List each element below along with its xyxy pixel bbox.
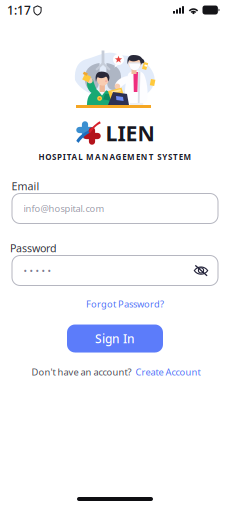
staticText: Create Account	[135, 366, 200, 378]
button[interactable]: Create Account	[135, 366, 200, 378]
staticText: Email	[11, 179, 39, 193]
staticText: • • • • •	[23, 264, 51, 277]
staticText: Sign In	[95, 330, 135, 346]
staticText: Password	[10, 241, 57, 255]
staticText: Forgot Password?	[86, 298, 164, 310]
staticText: LIEN	[105, 119, 154, 147]
staticText: Don't have an account?	[31, 366, 131, 378]
button[interactable]: Show password	[187, 255, 214, 286]
button[interactable]: Sign In	[67, 324, 163, 352]
button[interactable]: Forgot Password?	[83, 295, 167, 313]
staticText: HOSPITAL MANAGEMENT SYSTEM	[38, 152, 192, 162]
staticText: info@hospital.com	[23, 202, 104, 215]
staticText: 1:17	[7, 2, 31, 18]
